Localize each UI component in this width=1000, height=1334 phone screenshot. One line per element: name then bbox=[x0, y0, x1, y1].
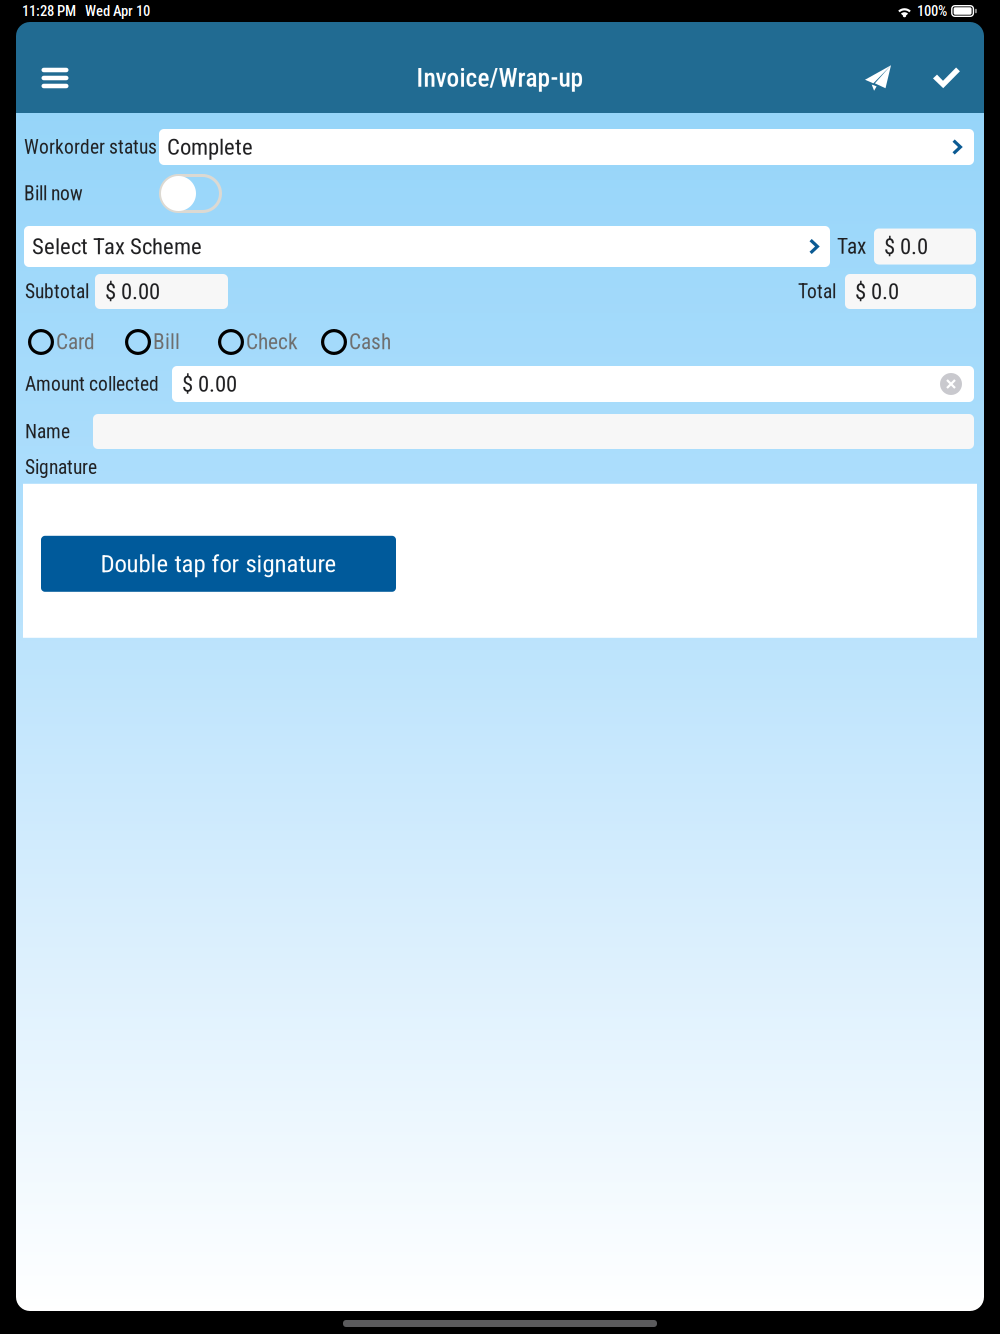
staticText: Invoice/Wrap-up bbox=[416, 63, 583, 93]
staticText: Wed Apr 10 bbox=[85, 2, 150, 20]
button[interactable]: Check bbox=[218, 327, 298, 357]
button[interactable]: Menu bbox=[32, 55, 78, 101]
button[interactable]: Bill bbox=[125, 327, 180, 357]
staticText: $ 0.00 bbox=[105, 278, 160, 305]
staticText: Complete bbox=[167, 134, 253, 160]
button[interactable]: Select Tax Scheme bbox=[24, 226, 830, 267]
button[interactable]: Complete bbox=[159, 129, 974, 165]
staticText: Bill now bbox=[24, 182, 83, 205]
button[interactable]: Card bbox=[28, 327, 95, 357]
button[interactable]: Save bbox=[918, 55, 975, 101]
button[interactable]: Clear bbox=[940, 373, 962, 395]
staticText: Bill bbox=[153, 329, 180, 354]
staticText: Card bbox=[56, 329, 95, 354]
staticText: Amount collected bbox=[25, 373, 159, 395]
button[interactable]: Cash bbox=[321, 327, 391, 357]
staticText: Double tap for signature bbox=[100, 549, 336, 578]
staticText: $ 0.00 bbox=[182, 371, 237, 397]
staticText: $ 0.0 bbox=[855, 278, 899, 305]
staticText: Signature bbox=[25, 456, 97, 479]
staticText: $ 0.0 bbox=[884, 233, 928, 260]
staticText: Cash bbox=[349, 329, 391, 354]
button[interactable]: Bill now bbox=[159, 174, 222, 213]
staticText: Tax bbox=[837, 234, 866, 259]
staticText: 11:28 PM bbox=[22, 2, 76, 20]
staticText: Check bbox=[246, 329, 298, 354]
staticText: 100% bbox=[917, 2, 947, 20]
staticText: Name bbox=[25, 420, 70, 443]
staticText: Workorder status bbox=[24, 136, 157, 158]
button[interactable]: Double tap for signature bbox=[41, 536, 396, 592]
staticText: Select Tax Scheme bbox=[32, 233, 202, 260]
staticText: Total bbox=[798, 280, 836, 303]
button[interactable]: Send bbox=[856, 55, 918, 101]
staticText: Subtotal bbox=[25, 280, 89, 303]
